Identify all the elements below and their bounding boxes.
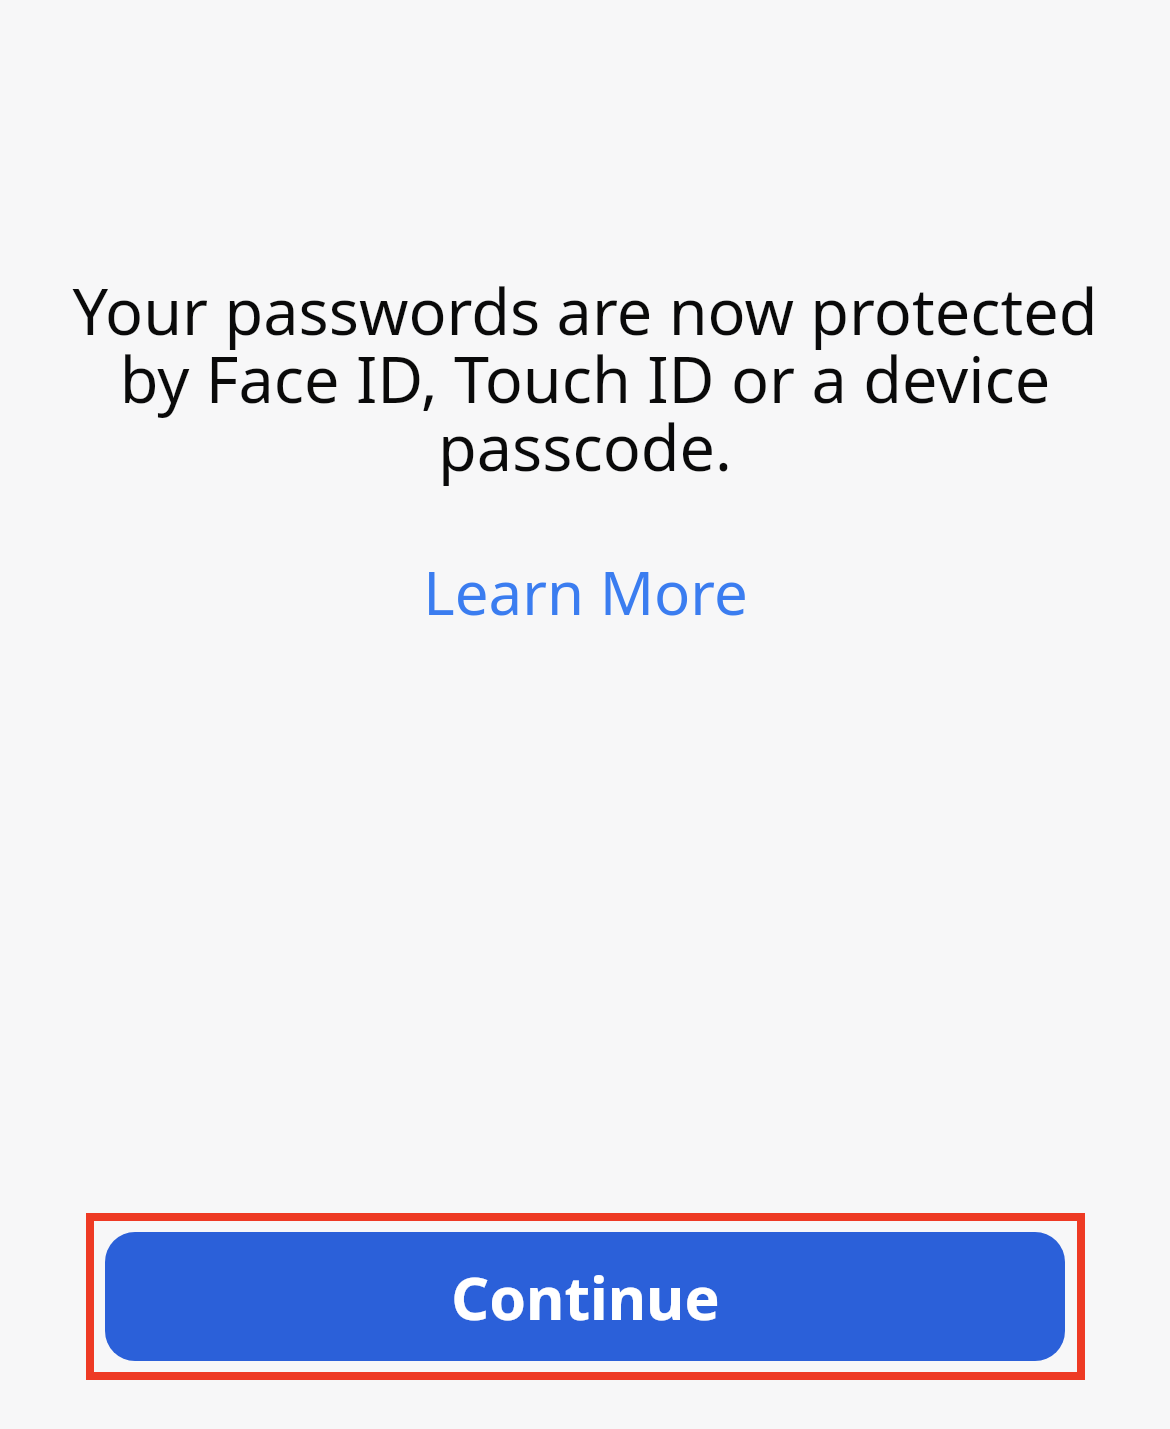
- staticText: Continue: [451, 1257, 720, 1337]
- staticText: Learn More: [423, 551, 748, 633]
- staticText: Your passwords are now protected by Face…: [40, 268, 1130, 490]
- button[interactable]: Continue: [105, 1232, 1065, 1361]
- button[interactable]: Learn More: [411, 547, 760, 637]
